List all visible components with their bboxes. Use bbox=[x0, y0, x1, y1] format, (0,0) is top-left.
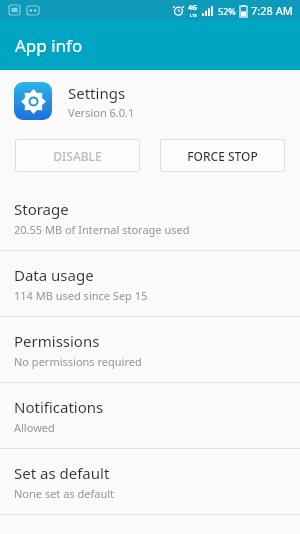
button[interactable]: Set as default bbox=[0, 449, 300, 514]
button[interactable]: FORCE STOP bbox=[160, 139, 285, 172]
staticText: Version 6.0.1 bbox=[68, 105, 135, 120]
button[interactable]: DISABLE bbox=[15, 139, 140, 172]
button[interactable]: Data usage bbox=[0, 251, 300, 316]
staticText: LTE bbox=[190, 13, 197, 18]
button[interactable]: Permissions bbox=[0, 317, 300, 382]
staticText: Set as default bbox=[14, 463, 110, 483]
staticText: 20.55 MB of Internal storage used bbox=[14, 222, 190, 237]
staticText: 7:28 AM bbox=[251, 3, 293, 18]
staticText: None set as default bbox=[14, 486, 115, 501]
staticText: Settings bbox=[68, 83, 126, 103]
staticText: Storage bbox=[14, 199, 69, 219]
staticText: Permissions bbox=[14, 331, 100, 351]
staticText: DISABLE bbox=[53, 148, 102, 164]
staticText: Data usage bbox=[14, 265, 94, 285]
staticText: 52% bbox=[218, 5, 236, 17]
staticText: Allowed bbox=[14, 420, 55, 435]
staticText: No permissions required bbox=[14, 354, 142, 369]
staticText: Notifications bbox=[14, 397, 104, 417]
staticText: 114 MB used since Sep 15 bbox=[14, 288, 148, 303]
button[interactable]: Storage bbox=[0, 185, 300, 250]
staticText: App info bbox=[15, 34, 83, 57]
button[interactable]: Notifications bbox=[0, 383, 300, 448]
staticText: 4G bbox=[188, 3, 198, 13]
staticText: FORCE STOP bbox=[187, 148, 258, 164]
